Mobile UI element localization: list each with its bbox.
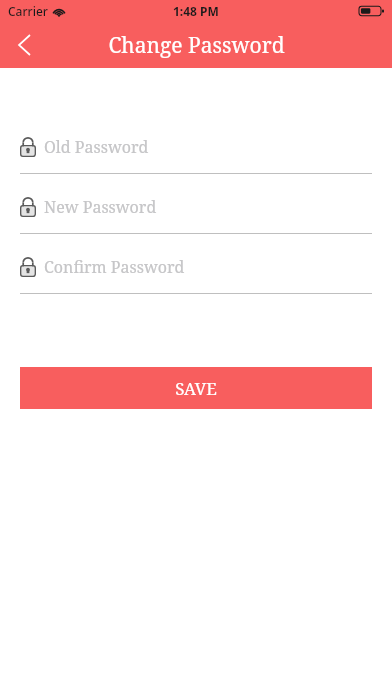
staticText: 1:48 PM xyxy=(173,3,219,19)
staticText: Old Password xyxy=(44,136,149,158)
button[interactable]: Old Password xyxy=(0,134,392,174)
staticText: Change Password xyxy=(108,31,285,60)
staticText: New Password xyxy=(44,196,157,218)
staticText: SAVE xyxy=(175,377,217,400)
button[interactable]: New Password xyxy=(0,194,392,234)
button[interactable]: Confirm Password xyxy=(0,254,392,294)
button[interactable]: SAVE xyxy=(20,367,372,409)
staticText: Confirm Password xyxy=(44,256,185,278)
button[interactable]: Back xyxy=(0,22,48,68)
staticText: Carrier xyxy=(8,3,48,19)
